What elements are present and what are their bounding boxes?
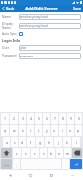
staticText: o: [69, 128, 72, 133]
button[interactable]: Recents: [41, 170, 62, 180]
button[interactable]: Hide keyboard: [62, 170, 83, 180]
staticText: r: [30, 128, 32, 133]
button[interactable]: x: [22, 148, 30, 158]
button[interactable]: 7: [51, 113, 58, 124]
staticText: k: [66, 140, 68, 145]
staticText: 1: [4, 116, 6, 121]
staticText: 4: [30, 116, 32, 121]
staticText: wireless.proxy.local: [20, 15, 49, 19]
staticText: z: [16, 151, 18, 156]
staticText: 6: [46, 116, 48, 121]
button[interactable]: 5: [35, 113, 42, 124]
staticText: s: [14, 140, 16, 145]
button[interactable]: h: [45, 137, 53, 147]
staticText: wireless.proxy.local: [20, 24, 49, 28]
button[interactable]: l: [72, 137, 80, 147]
staticText: e: [22, 128, 24, 133]
staticText: Back: [6, 6, 15, 11]
button[interactable]: Home: [20, 170, 41, 180]
button[interactable]: Save: [71, 5, 83, 12]
button[interactable]: m: [64, 148, 71, 158]
button[interactable]: f: [27, 137, 35, 147]
staticText: 7: [54, 116, 56, 121]
button[interactable]: q: [1, 125, 9, 136]
button[interactable]: Display Name: [2, 22, 81, 30]
button[interactable]: y: [43, 125, 50, 136]
button[interactable]: 6: [43, 113, 50, 124]
staticText: g: [39, 140, 42, 145]
button[interactable]: 4: [27, 113, 34, 124]
button[interactable]: i: [59, 125, 66, 136]
button[interactable]: r: [27, 125, 34, 136]
button[interactable]: Password: [2, 53, 81, 59]
button[interactable]: 8: [59, 113, 66, 124]
staticText: t: [38, 128, 40, 133]
staticText: h: [48, 140, 51, 145]
staticText: y: [46, 128, 48, 133]
button[interactable]: 2: [10, 113, 18, 124]
staticText: x: [25, 151, 27, 156]
staticText: 8: [62, 116, 64, 121]
staticText: User: [2, 46, 19, 50]
button[interactable]: 1: [1, 113, 9, 124]
button[interactable]: Backspace: [72, 148, 82, 158]
button[interactable]: s: [11, 137, 18, 147]
staticText: m: [66, 151, 70, 156]
staticText: w: [13, 128, 16, 133]
button[interactable]: p: [75, 125, 82, 136]
staticText: 9: [70, 116, 72, 121]
button[interactable]: d: [19, 137, 26, 147]
staticText: 3: [22, 116, 24, 121]
staticText: n: [58, 151, 61, 156]
button[interactable]: ,: [13, 159, 20, 169]
button[interactable]: 0: [75, 113, 82, 124]
button[interactable]: g: [36, 137, 44, 147]
button[interactable]: Name: [2, 14, 81, 20]
button[interactable]: j: [54, 137, 62, 147]
button[interactable]: c: [31, 148, 39, 158]
staticText: Login Info: [2, 38, 21, 43]
button[interactable]: 9: [67, 113, 74, 124]
staticText: d: [21, 140, 24, 145]
staticText: Display Name: [2, 22, 19, 30]
staticText: 5: [38, 116, 40, 121]
staticText: Save: [73, 6, 81, 11]
staticText: p: [77, 128, 80, 133]
button[interactable]: Symbols: [1, 159, 12, 169]
button[interactable]: w: [10, 125, 18, 136]
button[interactable]: Auto Sync: [2, 32, 81, 36]
button[interactable]: t: [35, 125, 42, 136]
button[interactable]: 3: [19, 113, 26, 124]
staticText: Auto Sync: [2, 32, 19, 36]
button[interactable]: Back: [0, 5, 17, 12]
button[interactable]: a: [3, 137, 10, 147]
staticText: Name: [2, 15, 19, 19]
staticText: 0: [78, 116, 80, 121]
button[interactable]: b: [48, 148, 55, 158]
staticText: Add/Edit Server: [25, 6, 58, 12]
button[interactable]: u: [51, 125, 58, 136]
staticText: .: [65, 162, 66, 167]
staticText: v: [43, 151, 45, 156]
staticText: u: [53, 128, 56, 133]
button[interactable]: User: [2, 45, 81, 51]
button[interactable]: e: [19, 125, 26, 136]
button[interactable]: z: [13, 148, 21, 158]
staticText: i: [62, 128, 63, 133]
button[interactable]: Back: [0, 170, 20, 180]
staticText: j: [58, 140, 59, 145]
staticText: Password: [2, 54, 19, 58]
button[interactable]: k: [63, 137, 71, 147]
button[interactable]: Enter: [70, 159, 82, 169]
staticText: jdoe: [20, 46, 27, 50]
staticText: a: [6, 140, 8, 145]
staticText: b: [50, 151, 53, 156]
staticText: ?123: [4, 163, 10, 166]
button[interactable]: n: [56, 148, 63, 158]
button[interactable]: o: [67, 125, 74, 136]
button[interactable]: v: [40, 148, 47, 158]
staticText: ••••••••••: [20, 54, 33, 59]
button[interactable]: Shift: [1, 148, 12, 158]
